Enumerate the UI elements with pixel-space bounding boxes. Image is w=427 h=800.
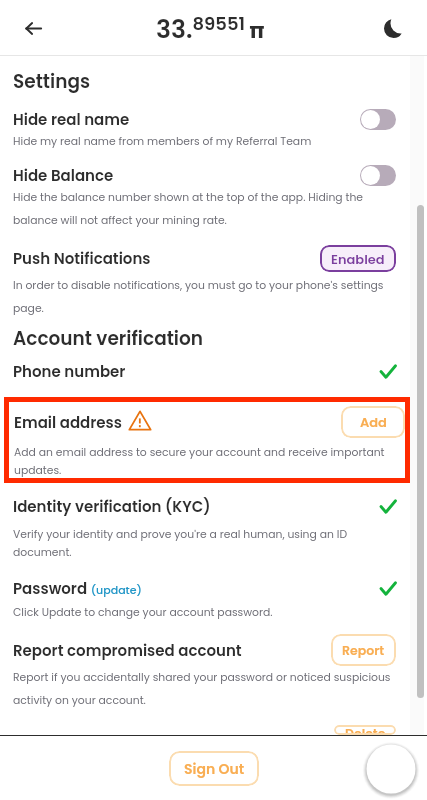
- staticText: 33.89551 π: [156, 11, 265, 47]
- staticText: Settings: [13, 69, 91, 95]
- staticText: In order to disable notifications, you m…: [13, 278, 396, 316]
- staticText: Report compromised account: [13, 640, 331, 661]
- button[interactable]: Toggle: [360, 109, 396, 130]
- button[interactable]: Dark mode: [377, 12, 409, 44]
- button[interactable]: Report: [331, 634, 396, 666]
- staticText: Hide Balance: [13, 165, 360, 186]
- button[interactable]: Delete: [334, 725, 396, 735]
- staticText: Account verification: [13, 326, 204, 352]
- staticText: Delete: [345, 725, 386, 735]
- staticText: Password (update): [13, 578, 380, 599]
- staticText: Identity verification (KYC): [13, 496, 380, 517]
- staticText: Report if you accidentally shared your p…: [13, 670, 396, 708]
- button[interactable]: Back: [14, 9, 52, 47]
- staticText: Add an email address to secure your acco…: [14, 445, 405, 478]
- staticText: Phone number: [13, 361, 380, 382]
- staticText: Report: [342, 642, 385, 659]
- staticText: Hide real name: [13, 109, 360, 130]
- button[interactable]: Enabled: [320, 245, 396, 272]
- staticText: Email address: [14, 412, 122, 433]
- staticText: Click Update to change your account pass…: [13, 605, 273, 620]
- staticText: Sign Out: [184, 759, 245, 779]
- staticText: Hide the balance number shown at the top…: [13, 190, 396, 228]
- staticText: Hide my real name from members of my Ref…: [13, 134, 312, 149]
- button[interactable]: Chat: [359, 737, 423, 800]
- staticText: Add: [360, 413, 387, 431]
- button[interactable]: Add: [341, 406, 405, 438]
- staticText: Push Notifications: [13, 248, 320, 269]
- button[interactable]: Toggle: [360, 165, 396, 186]
- button[interactable]: Sign Out: [169, 751, 259, 786]
- staticText: Verify your identity and prove you're a …: [13, 527, 396, 560]
- staticText: Enabled: [331, 250, 385, 268]
